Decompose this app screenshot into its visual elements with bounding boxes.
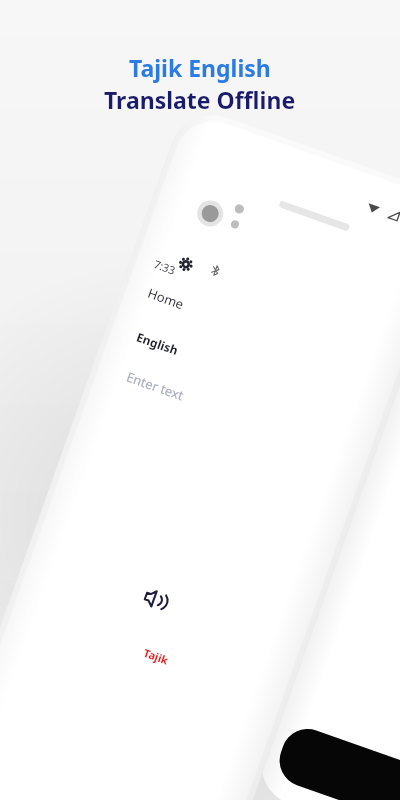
other: Tajik English Translate Offline promo sc…: [0, 0, 400, 800]
